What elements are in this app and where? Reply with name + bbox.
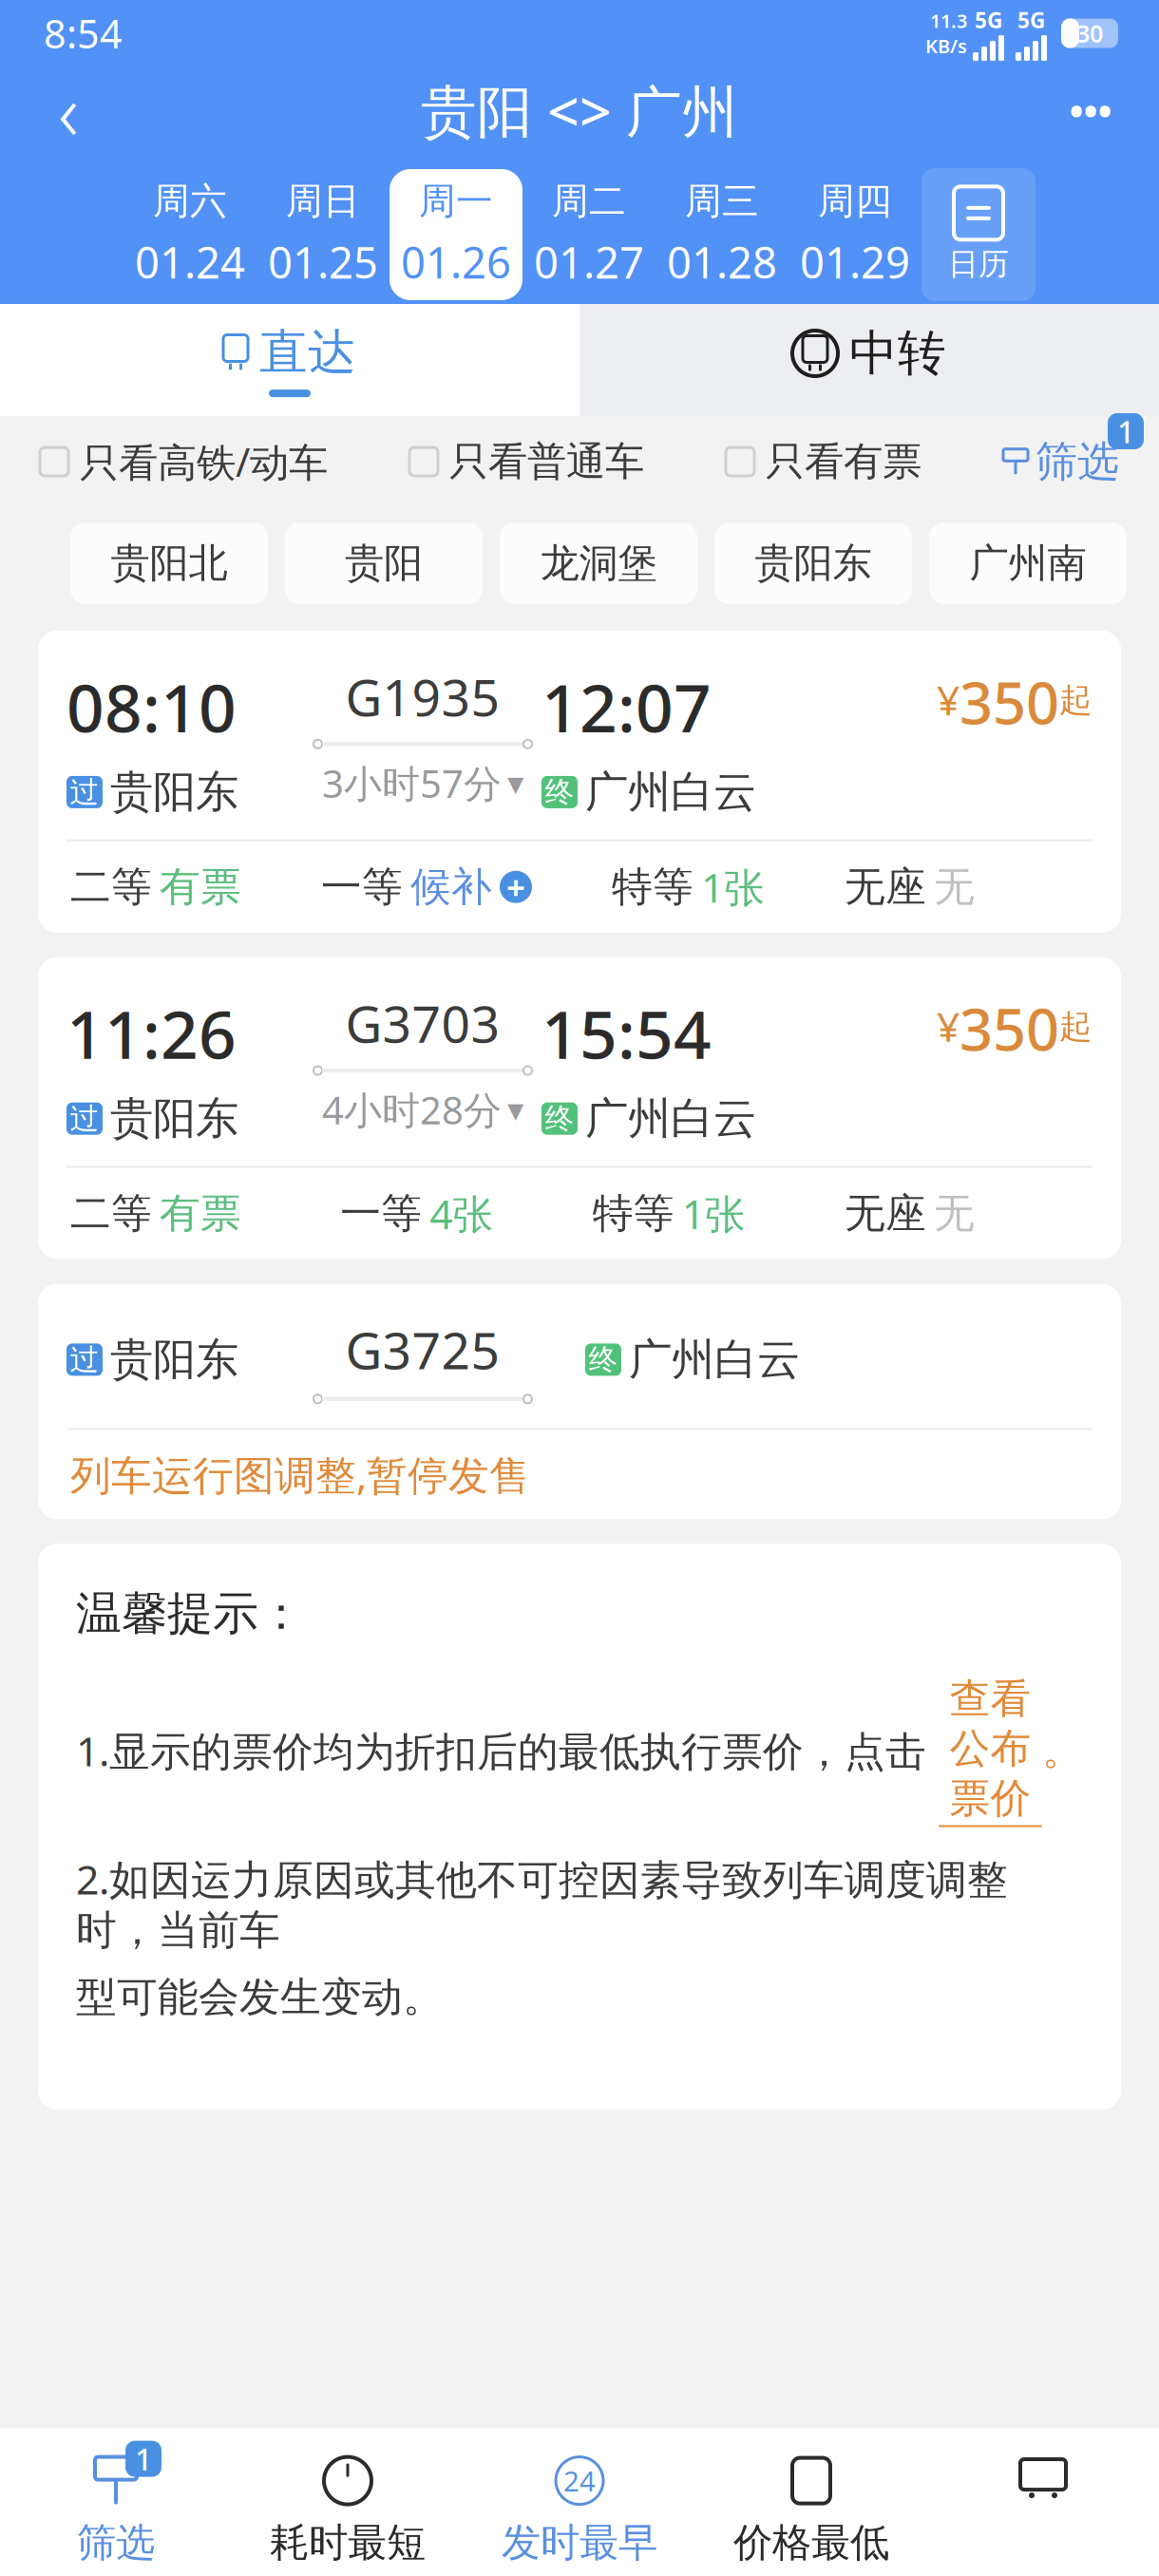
staticText: 日历 <box>948 245 1009 283</box>
button[interactable]: 龙洞堡 <box>500 522 697 604</box>
staticText: 贵阳东 <box>110 766 238 819</box>
button[interactable]: 筛选 <box>1003 436 1119 487</box>
button[interactable]: 日历 <box>921 168 1035 301</box>
button[interactable]: 周二 <box>522 169 655 300</box>
staticText: G3703 <box>345 990 500 1057</box>
staticText: 广州白云 <box>629 1333 800 1386</box>
staticText: 周六 <box>153 179 227 224</box>
staticText: 价格最低 <box>733 2519 889 2567</box>
staticText: 周三 <box>685 179 759 224</box>
staticText: 直达 <box>259 323 356 382</box>
button[interactable]: Back <box>23 69 114 151</box>
staticText: 30 <box>1076 17 1103 49</box>
button[interactable]: 过 <box>38 1284 1121 1519</box>
staticText: G3725 <box>345 1316 500 1383</box>
staticText: 01.24 <box>135 233 245 290</box>
button[interactable]: 耗时最短 <box>232 2454 464 2567</box>
button[interactable] <box>927 2452 1159 2569</box>
staticText: 筛选 <box>1035 436 1119 487</box>
staticText: 广州白云 <box>585 766 756 819</box>
staticText: 11:26 <box>66 990 237 1077</box>
staticText: 2.如因运力原因或其他不可控因素导致列车调度调整时，当前车 <box>76 1852 1008 1955</box>
button[interactable]: 贵阳北 <box>70 522 268 604</box>
staticText: 一等 <box>321 862 403 912</box>
staticText: 型可能会发生变动。 <box>76 1972 444 2022</box>
staticText: 温馨提示： <box>76 1586 304 1642</box>
staticText: 1 <box>1117 411 1134 451</box>
staticText: 5G <box>975 6 1002 34</box>
staticText: ••• <box>1069 85 1112 135</box>
staticText: 4张 <box>430 1187 493 1240</box>
button[interactable]: 08:10 <box>38 631 1121 933</box>
staticText: 15:54 <box>541 990 712 1077</box>
staticText: 1 <box>135 2439 152 2479</box>
staticText: 有票 <box>160 1189 241 1238</box>
staticText: 4小时28分 <box>322 1084 502 1135</box>
button[interactable]: 1 <box>0 2454 232 2567</box>
button[interactable]: More options <box>1045 69 1136 151</box>
staticText: 01.29 <box>800 233 910 290</box>
button[interactable]: 只看有票 <box>726 438 921 486</box>
button[interactable]: 查看公布票价 <box>939 1674 1042 1827</box>
button[interactable]: 周六 <box>123 169 256 300</box>
staticText: 终 <box>589 1342 618 1378</box>
staticText: 贵阳 <> 广州 <box>421 73 738 147</box>
staticText: 特等 <box>612 862 693 912</box>
button[interactable]: 周一 <box>389 169 522 300</box>
staticText: 贵阳 <box>345 539 423 587</box>
staticText: 贵阳北 <box>111 539 228 587</box>
staticText: 列车运行图调整,暂停发售 <box>70 1448 530 1501</box>
staticText: 广州白云 <box>585 1092 756 1145</box>
staticText: 耗时最短 <box>270 2519 426 2567</box>
staticText: 只看高铁/动车 <box>80 436 328 488</box>
button[interactable]: 11:26 <box>38 957 1121 1259</box>
staticText: ‹ <box>58 58 79 162</box>
staticText: 中转 <box>849 324 946 383</box>
staticText: 01.28 <box>667 233 777 290</box>
staticText: ▾ <box>507 764 523 802</box>
button[interactable]: 直达 <box>0 304 579 416</box>
staticText: 周日 <box>286 179 360 224</box>
staticText: KB/s <box>925 33 967 59</box>
staticText: 有票 <box>160 862 241 912</box>
staticText: 12:07 <box>541 663 712 750</box>
button[interactable]: 广州南 <box>929 522 1127 604</box>
staticText: 周二 <box>552 179 626 224</box>
staticText: 起 <box>1059 1007 1092 1047</box>
staticText: 一等 <box>340 1189 422 1238</box>
staticText: 只看有票 <box>766 438 921 486</box>
button[interactable]: 周四 <box>788 169 921 300</box>
button[interactable]: 价格最低 <box>695 2454 927 2567</box>
staticText: 8:54 <box>44 7 123 59</box>
staticText: 1.显示的票价均为折扣后的最低执行票价，点击 <box>76 1724 939 1777</box>
button[interactable]: 中转 <box>579 304 1159 416</box>
button[interactable]: 贵阳 <box>285 522 483 604</box>
staticText: ▾ <box>507 1091 523 1128</box>
staticText: 350 <box>959 663 1059 740</box>
staticText: 贵阳东 <box>110 1333 238 1386</box>
staticText: 1张 <box>701 860 765 914</box>
button[interactable]: 24 <box>464 2454 695 2567</box>
staticText: 1张 <box>682 1187 745 1240</box>
staticText: 贵阳东 <box>110 1092 238 1145</box>
staticText: 01.26 <box>401 233 511 290</box>
staticText: 周四 <box>818 179 892 224</box>
staticText: 无座 <box>845 1189 926 1238</box>
staticText: 二等 <box>70 862 152 912</box>
staticText: 01.25 <box>268 233 378 290</box>
staticText: 过 <box>70 774 99 810</box>
button[interactable]: 周日 <box>256 169 389 300</box>
staticText: 3小时57分 <box>322 758 502 808</box>
button[interactable]: 周三 <box>655 169 788 300</box>
button[interactable]: 贵阳东 <box>714 522 912 604</box>
staticText: 筛选 <box>77 2519 155 2567</box>
staticText: 5G <box>1017 6 1045 34</box>
staticText: 11.3 <box>930 8 967 33</box>
staticText: 08:10 <box>66 663 237 750</box>
staticText: 01.27 <box>534 233 644 290</box>
staticText: 起 <box>1059 680 1092 721</box>
button[interactable]: 只看普通车 <box>409 438 644 486</box>
button[interactable]: 只看高铁/动车 <box>40 436 328 488</box>
staticText: + <box>506 865 525 909</box>
staticText: 终 <box>545 1101 574 1136</box>
